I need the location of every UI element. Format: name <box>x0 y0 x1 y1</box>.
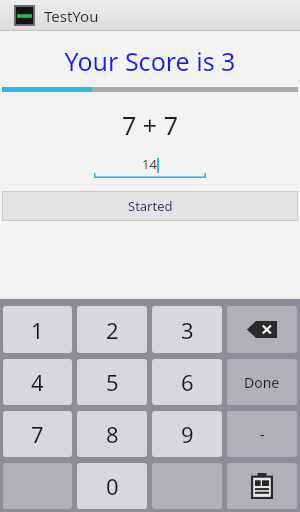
staticText: - <box>260 425 265 444</box>
staticText: 2 <box>106 315 119 345</box>
button[interactable]: 3 <box>152 306 222 353</box>
button[interactable]: 0 <box>77 463 147 509</box>
button[interactable]: Delete <box>227 306 297 353</box>
staticText: 0 <box>106 471 119 501</box>
staticText: 1 <box>31 315 44 345</box>
staticText: Started <box>128 197 173 215</box>
button[interactable]: Clipboard <box>227 463 297 509</box>
button[interactable]: - <box>227 411 297 457</box>
staticText: Done <box>244 373 280 392</box>
button[interactable]: Done <box>227 359 297 405</box>
button[interactable]: 4 <box>3 359 72 405</box>
staticText: 6 <box>181 367 194 397</box>
staticText: Your Score is 3 <box>0 44 300 78</box>
staticText: 3 <box>181 315 194 345</box>
button[interactable]: 7 <box>3 411 72 457</box>
button[interactable]: Started <box>3 192 297 220</box>
button[interactable]: 9 <box>152 411 222 457</box>
staticText: 8 <box>106 419 119 449</box>
staticText: 7 + 7 <box>0 108 300 142</box>
staticText: 14 <box>142 155 157 173</box>
staticText: 7 <box>31 419 44 449</box>
staticText: TestYou <box>44 6 99 26</box>
button[interactable]: 5 <box>77 359 147 405</box>
button[interactable]: 6 <box>152 359 222 405</box>
button[interactable]: 2 <box>77 306 147 353</box>
button[interactable]: 8 <box>77 411 147 457</box>
button[interactable]: 1 <box>3 306 72 353</box>
button[interactable]: 14 <box>94 154 206 178</box>
staticText: 5 <box>106 367 119 397</box>
staticText: 4 <box>31 367 44 397</box>
staticText: 9 <box>181 419 194 449</box>
